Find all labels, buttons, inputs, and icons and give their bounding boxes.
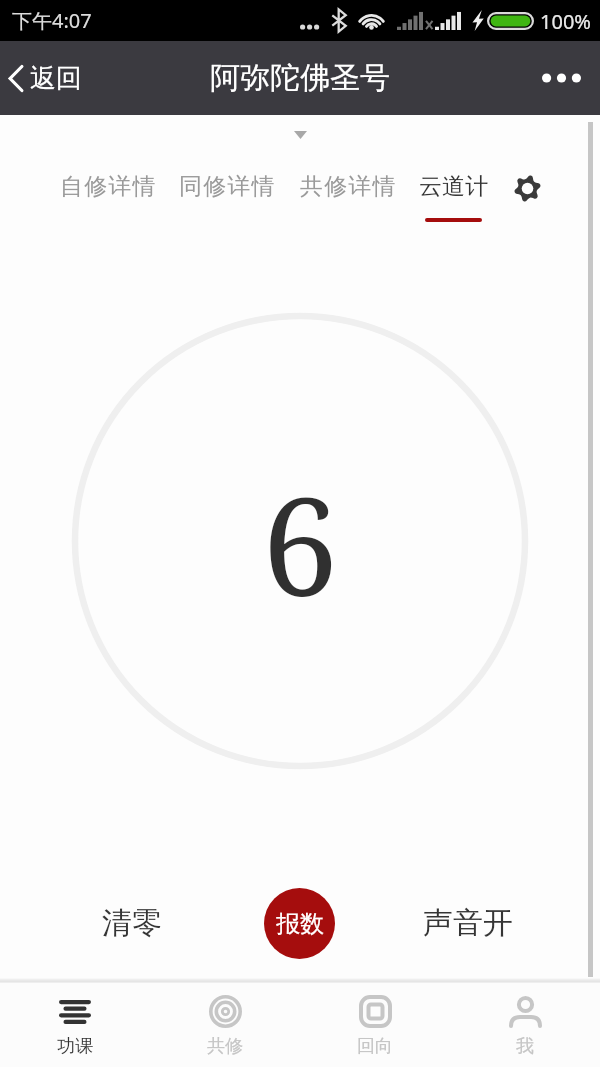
button[interactable]: 清零 (82, 890, 182, 956)
staticText: 自修详情 (60, 172, 157, 201)
staticText: 100% (540, 8, 591, 35)
staticText: 同修详情 (179, 172, 276, 201)
button[interactable]: 共修详情 (300, 172, 397, 201)
button[interactable]: Settings (514, 175, 541, 202)
staticText: 回向 (357, 1035, 393, 1058)
button[interactable]: 返回 (0, 52, 98, 105)
staticText: 返回 (30, 62, 82, 95)
button[interactable]: More options (522, 53, 600, 103)
staticText: 云道计 (419, 172, 488, 201)
staticText: 共修详情 (300, 172, 397, 201)
staticText: 报数 (276, 909, 324, 939)
button[interactable]: 回向 (300, 983, 450, 1067)
button[interactable]: 功课 (0, 983, 150, 1067)
button[interactable]: Expand (294, 131, 307, 139)
staticText: 功课 (57, 1035, 93, 1058)
staticText: 声音开 (423, 904, 513, 942)
button[interactable]: 共修 (150, 983, 300, 1067)
staticText: 阿弥陀佛圣号 (210, 59, 390, 97)
staticText: 清零 (102, 904, 162, 942)
button[interactable]: 自修详情 (60, 172, 157, 201)
staticText: 我 (516, 1035, 534, 1058)
staticText: 共修 (207, 1035, 243, 1058)
button[interactable]: 云道计 (419, 172, 488, 222)
button[interactable]: 我 (450, 983, 600, 1067)
button[interactable]: 报数 (264, 888, 335, 959)
staticText: 6 (0, 451, 600, 636)
button[interactable]: 声音开 (403, 890, 533, 956)
button[interactable]: 同修详情 (179, 172, 276, 201)
staticText: 下午4:07 (12, 7, 92, 34)
